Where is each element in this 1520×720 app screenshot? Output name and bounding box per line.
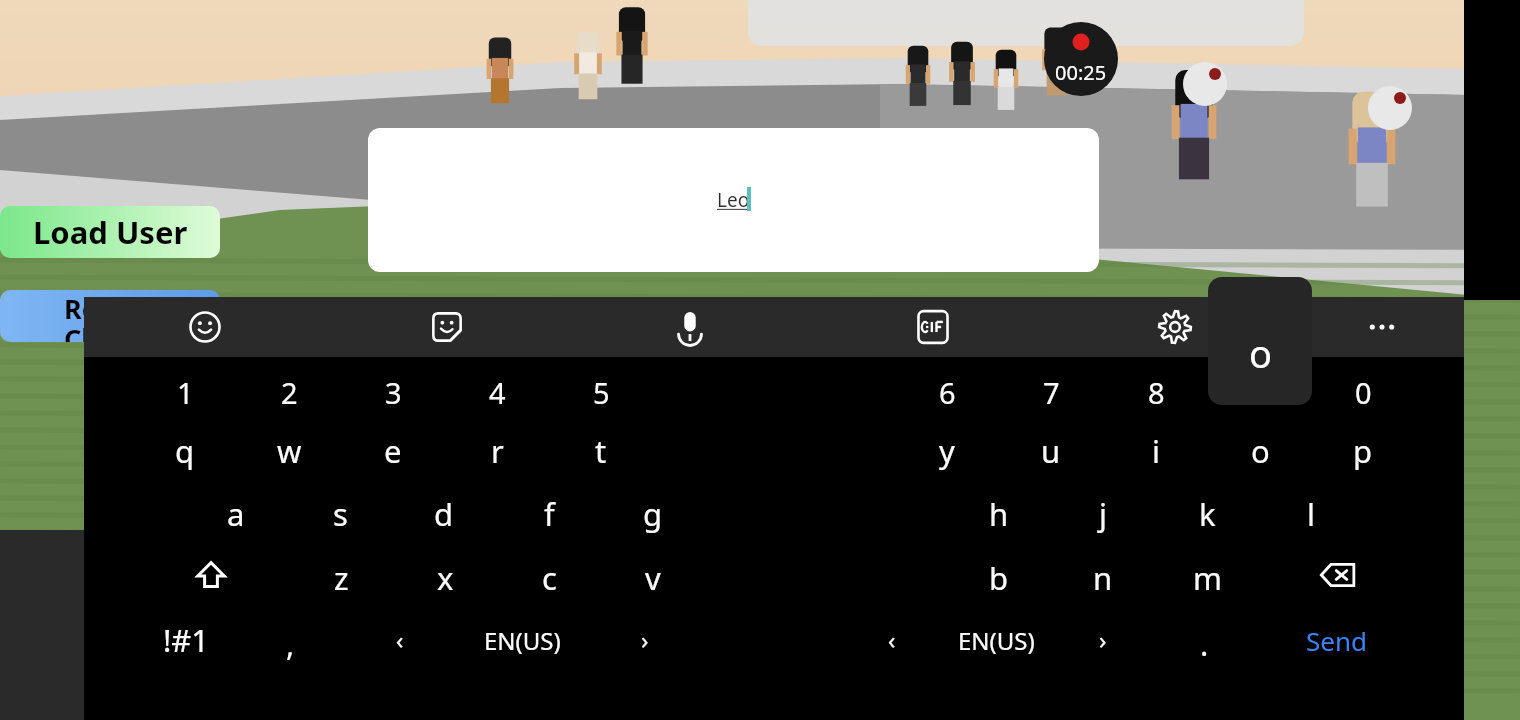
button[interactable]: EN(US) [946, 612, 1046, 668]
button[interactable]: c [499, 550, 599, 606]
staticText: 9 [1252, 373, 1269, 412]
button[interactable]: Keyboard settings [1145, 297, 1205, 357]
staticText: 00:25 [1055, 59, 1107, 86]
staticText: r [491, 430, 504, 472]
staticText: n [1093, 557, 1113, 599]
button[interactable]: d [394, 486, 494, 542]
staticText: p [1353, 430, 1373, 472]
button[interactable]: n [1053, 550, 1153, 606]
staticText: EN(US) [958, 624, 1035, 657]
staticText: 7 [1043, 373, 1060, 412]
button[interactable]: x [395, 550, 495, 606]
staticText: g [643, 493, 663, 535]
staticText: v [645, 557, 661, 599]
button[interactable]: › [595, 611, 695, 667]
button[interactable]: k [1157, 486, 1257, 542]
staticText: m [1193, 557, 1222, 599]
staticText: 2 [281, 373, 298, 412]
button[interactable]: e [343, 423, 443, 479]
button[interactable]: Voice input [660, 297, 720, 357]
button[interactable]: 4 [447, 364, 547, 420]
button[interactable]: GIF [903, 297, 963, 357]
staticText: 0 [1355, 373, 1372, 412]
button[interactable]: m [1157, 550, 1257, 606]
staticText: u [1041, 430, 1061, 472]
button[interactable]: Sticker [417, 297, 477, 357]
button[interactable]: 2 [239, 364, 339, 420]
button[interactable]: r [447, 423, 547, 479]
staticText: Send [1306, 623, 1367, 658]
button[interactable]: 3 [343, 364, 443, 420]
staticText: i [1152, 430, 1160, 472]
button[interactable]: Load User [0, 206, 220, 258]
button[interactable]: q [135, 423, 235, 479]
staticText: 1 [177, 373, 194, 412]
button[interactable]: › [1053, 611, 1153, 667]
button[interactable]: ‹ [842, 611, 942, 667]
staticText: ‹ [888, 623, 896, 656]
staticText: Load User [33, 211, 188, 253]
button[interactable]: u [1001, 423, 1101, 479]
button[interactable]: ‹ [350, 611, 450, 667]
button[interactable]: More options [1352, 297, 1412, 357]
button[interactable]: i [1106, 423, 1206, 479]
staticText: e [384, 430, 402, 472]
button[interactable]: Backspace [1308, 545, 1368, 605]
button[interactable]: !#1 [136, 612, 236, 668]
button[interactable]: Emoji [175, 297, 235, 357]
staticText: h [989, 493, 1009, 535]
staticText: Reload Chat [64, 290, 156, 342]
staticText: . [1200, 623, 1209, 665]
staticText: EN(US) [484, 624, 561, 657]
button[interactable]: b [949, 550, 1049, 606]
button[interactable]: . [1154, 616, 1254, 672]
staticText: t [595, 430, 607, 472]
button[interactable]: 5 [551, 364, 651, 420]
staticText: !#1 [163, 619, 210, 661]
button[interactable]: 0 [1313, 364, 1413, 420]
staticText: o [1249, 327, 1272, 379]
staticText: 8 [1148, 373, 1165, 412]
button[interactable]: Reload Chat [0, 290, 220, 342]
button[interactable]: 8 [1106, 364, 1206, 420]
button[interactable]: o [1210, 423, 1310, 479]
button[interactable]: Send [1268, 614, 1404, 666]
staticText: 6 [939, 373, 956, 412]
staticText: d [434, 493, 454, 535]
staticText: Leo [717, 187, 750, 213]
button[interactable]: v [603, 550, 703, 606]
button[interactable]: 9 [1210, 364, 1310, 420]
staticText: o [1251, 430, 1270, 472]
staticText: , [286, 623, 295, 665]
button[interactable]: z [291, 550, 391, 606]
staticText: a [227, 493, 245, 535]
button[interactable]: f [499, 486, 599, 542]
button[interactable]: g [603, 486, 703, 542]
staticText: ‹ [396, 623, 404, 656]
staticText: z [334, 557, 349, 599]
staticText: w [277, 430, 302, 472]
staticText: j [1099, 493, 1107, 535]
button[interactable]: EN(US) [472, 612, 572, 668]
button[interactable]: a [186, 486, 286, 542]
button[interactable]: Leo [368, 128, 1099, 272]
button[interactable]: 1 [135, 364, 235, 420]
button[interactable]: 6 [897, 364, 997, 420]
staticText: b [989, 557, 1009, 599]
button[interactable]: y [897, 423, 997, 479]
button[interactable]: p [1313, 423, 1413, 479]
button[interactable]: t [551, 423, 651, 479]
button[interactable]: w [239, 423, 339, 479]
button[interactable]: s [290, 486, 390, 542]
button[interactable]: 7 [1001, 364, 1101, 420]
staticText: k [1199, 493, 1216, 535]
button[interactable]: Recording timer [1044, 22, 1118, 96]
button[interactable]: j [1053, 486, 1153, 542]
button[interactable]: l [1261, 486, 1361, 542]
button[interactable]: Shift [181, 545, 241, 605]
staticText: c [542, 557, 557, 599]
staticText: l [1307, 493, 1315, 535]
staticText: 5 [593, 373, 610, 412]
button[interactable]: h [949, 486, 1049, 542]
button[interactable]: , [240, 616, 340, 672]
